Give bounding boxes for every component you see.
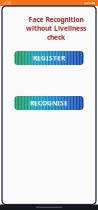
button[interactable]: RECOGNISE <box>14 96 83 110</box>
staticText: without Liveliness <box>26 24 86 33</box>
staticText: check <box>47 33 65 42</box>
staticText: 54% <box>84 0 91 6</box>
staticText: Face Recognition <box>28 15 83 24</box>
staticText: 4:39 <box>4 0 11 6</box>
staticText: RECOGNISE <box>30 99 68 107</box>
button[interactable]: REGISTER <box>14 51 83 65</box>
staticText: REGISTER <box>33 54 65 62</box>
